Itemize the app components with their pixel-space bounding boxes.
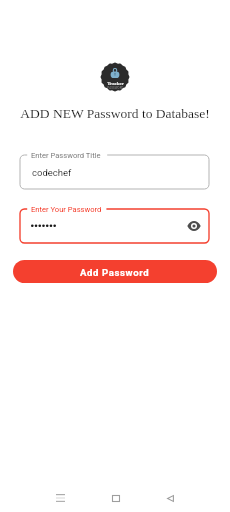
staticText: ADD NEW Password to Database! — [0, 106, 230, 121]
staticText: Add Password — [80, 267, 150, 278]
button[interactable]: Back — [160, 488, 180, 508]
staticText: Enter Your Password — [31, 205, 102, 214]
staticText: PASSWORD — [107, 86, 124, 89]
button[interactable]: Home — [106, 488, 126, 508]
staticText: Tracker — [107, 81, 124, 86]
staticText: Enter Password Title — [31, 151, 101, 160]
button[interactable]: Add Password — [13, 260, 217, 283]
button[interactable]: Toggle password visibility — [187, 219, 201, 233]
button[interactable]: Recent apps — [50, 488, 70, 508]
staticText: codechef — [32, 167, 72, 178]
